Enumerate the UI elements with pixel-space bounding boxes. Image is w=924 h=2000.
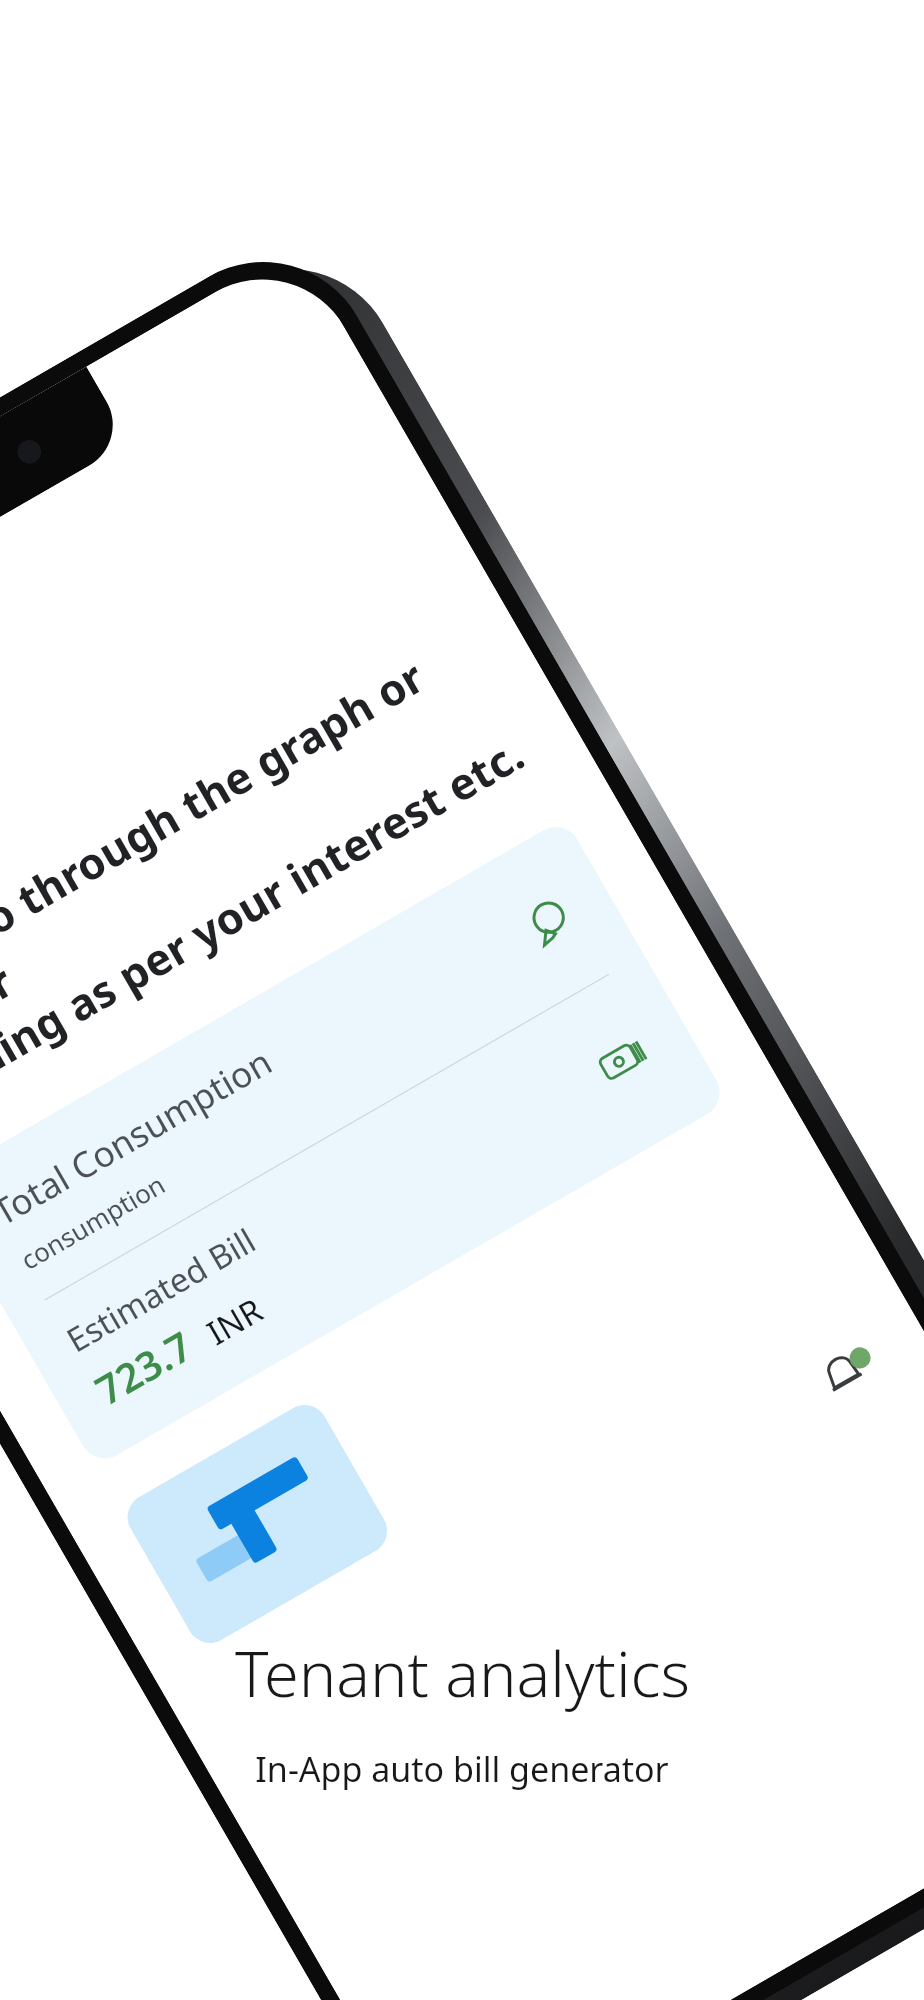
staticText: consumption: [14, 1165, 172, 1277]
button[interactable]: Bar chart: [119, 1396, 396, 1652]
staticText: Estimated Bill: [58, 1217, 263, 1362]
staticText: Tenant analytics: [235, 1630, 690, 1716]
staticText: 723.7: [85, 1318, 202, 1417]
button[interactable]: Total Consumption: [0, 818, 729, 1468]
staticText: Please go through the graph or table or …: [0, 619, 539, 1139]
staticText: Total Consumption: [0, 1037, 281, 1236]
staticText: In-App auto bill generator: [255, 1746, 669, 1792]
staticText: INR: [198, 1287, 271, 1354]
button[interactable]: Notifications: [801, 1327, 892, 1417]
